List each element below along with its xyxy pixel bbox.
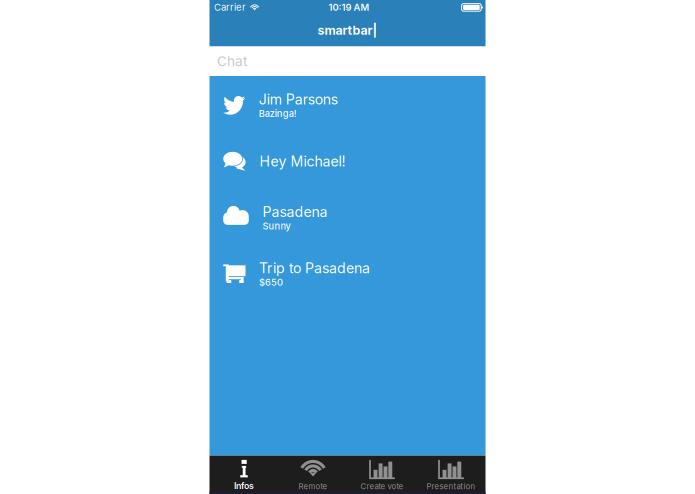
button[interactable]: Chat [209, 46, 485, 76]
staticText: Carrier [214, 2, 246, 13]
button[interactable]: Hey Michael! [209, 133, 485, 189]
staticText: Bazinga! [259, 108, 297, 119]
staticText: Jim Parsons [259, 91, 338, 108]
staticText: 10:19 AM [329, 2, 370, 13]
button[interactable]: Trip to Pasadena [209, 246, 485, 302]
staticText: Pasadena [262, 203, 327, 220]
staticText: Sunny [262, 220, 290, 232]
staticText: Chat [217, 53, 247, 69]
button[interactable]: Remote [278, 456, 347, 494]
staticText: Infos [234, 481, 254, 491]
staticText: Create vote [360, 482, 403, 491]
staticText: smartbar| [317, 23, 377, 38]
staticText: Hey Michael! [259, 153, 345, 170]
staticText: Remote [298, 482, 327, 491]
button[interactable]: Infos [209, 456, 278, 494]
staticText: $650 [259, 277, 283, 288]
button[interactable]: Presentation [416, 456, 485, 494]
button[interactable]: Create vote [347, 456, 416, 494]
staticText: Trip to Pasadena [259, 259, 370, 277]
button[interactable]: Pasadena [209, 189, 485, 246]
staticText: Presentation [426, 482, 475, 491]
button[interactable]: Jim Parsons [209, 77, 485, 133]
